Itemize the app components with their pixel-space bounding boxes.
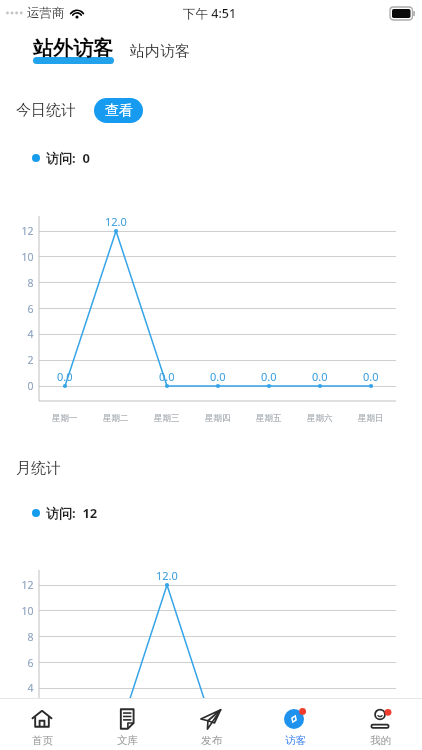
button[interactable]: 访客 [253, 699, 337, 750]
staticText: 查看 [105, 102, 133, 120]
staticText: 发布 [201, 734, 222, 747]
staticText: 站外访客 [33, 36, 113, 61]
button[interactable]: 查看 [94, 98, 143, 123]
button[interactable]: 站外访客 [33, 38, 114, 63]
button[interactable]: 我的 [338, 699, 422, 750]
button[interactable]: 文库 [85, 699, 169, 750]
staticText: 我的 [370, 734, 391, 747]
staticText: 首页 [32, 734, 53, 747]
staticText: 访问: 12 [46, 504, 98, 522]
staticText: 运营商 [27, 5, 65, 21]
staticText: 访问: 0 [46, 149, 90, 167]
staticText: 站内访客 [130, 42, 190, 61]
button[interactable]: 发布 [169, 699, 253, 750]
button[interactable]: 首页 [0, 699, 84, 750]
staticText: 文库 [117, 734, 138, 747]
staticText: 月统计 [16, 459, 61, 478]
staticText: 下午 4:51 [183, 5, 237, 22]
staticText: 今日统计 [16, 101, 76, 120]
staticText: 访客 [285, 734, 306, 747]
button[interactable]: 站内访客 [130, 42, 190, 61]
